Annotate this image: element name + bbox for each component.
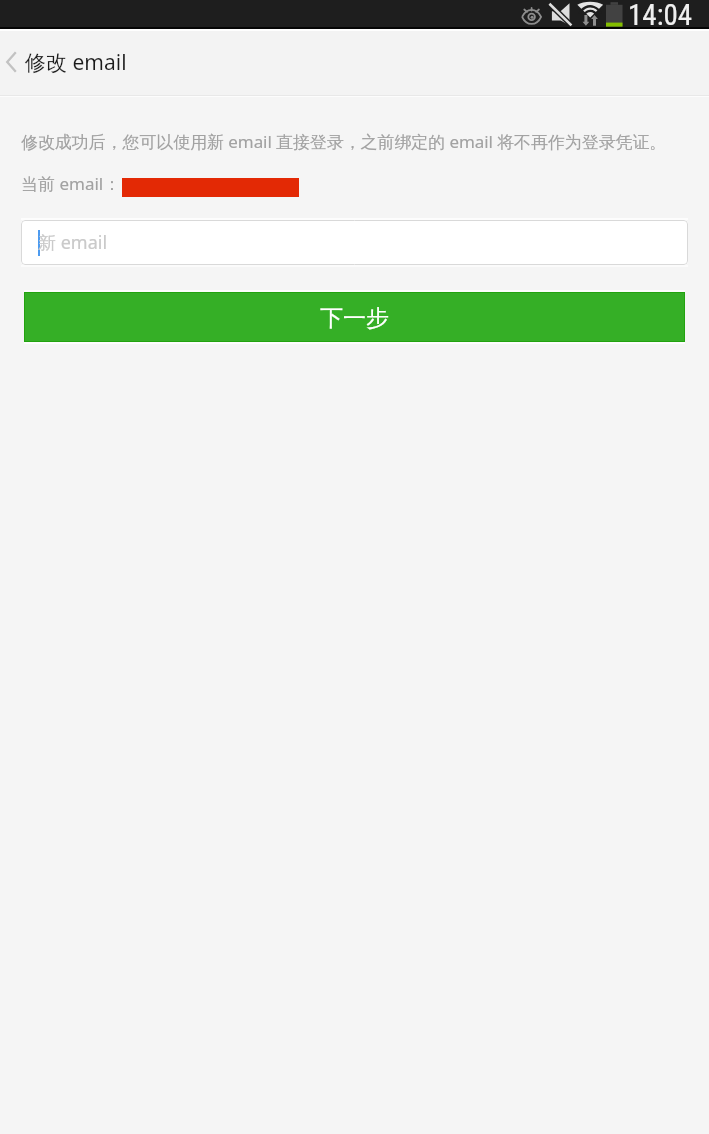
staticText: 修改成功后，您可以使用新 email 直接登录，之前绑定的 email 将不再作… — [21, 130, 667, 153]
staticText: 14:04 — [628, 0, 693, 27]
staticText: 新 email — [38, 230, 108, 255]
staticText: 修改 email — [25, 48, 127, 77]
button[interactable]: 新 email — [21, 220, 688, 265]
staticText: 下一步 — [320, 304, 389, 333]
button[interactable]: 下一步 — [25, 293, 684, 341]
staticText: 当前 email： — [21, 172, 121, 195]
button[interactable]: Back — [0, 31, 22, 95]
